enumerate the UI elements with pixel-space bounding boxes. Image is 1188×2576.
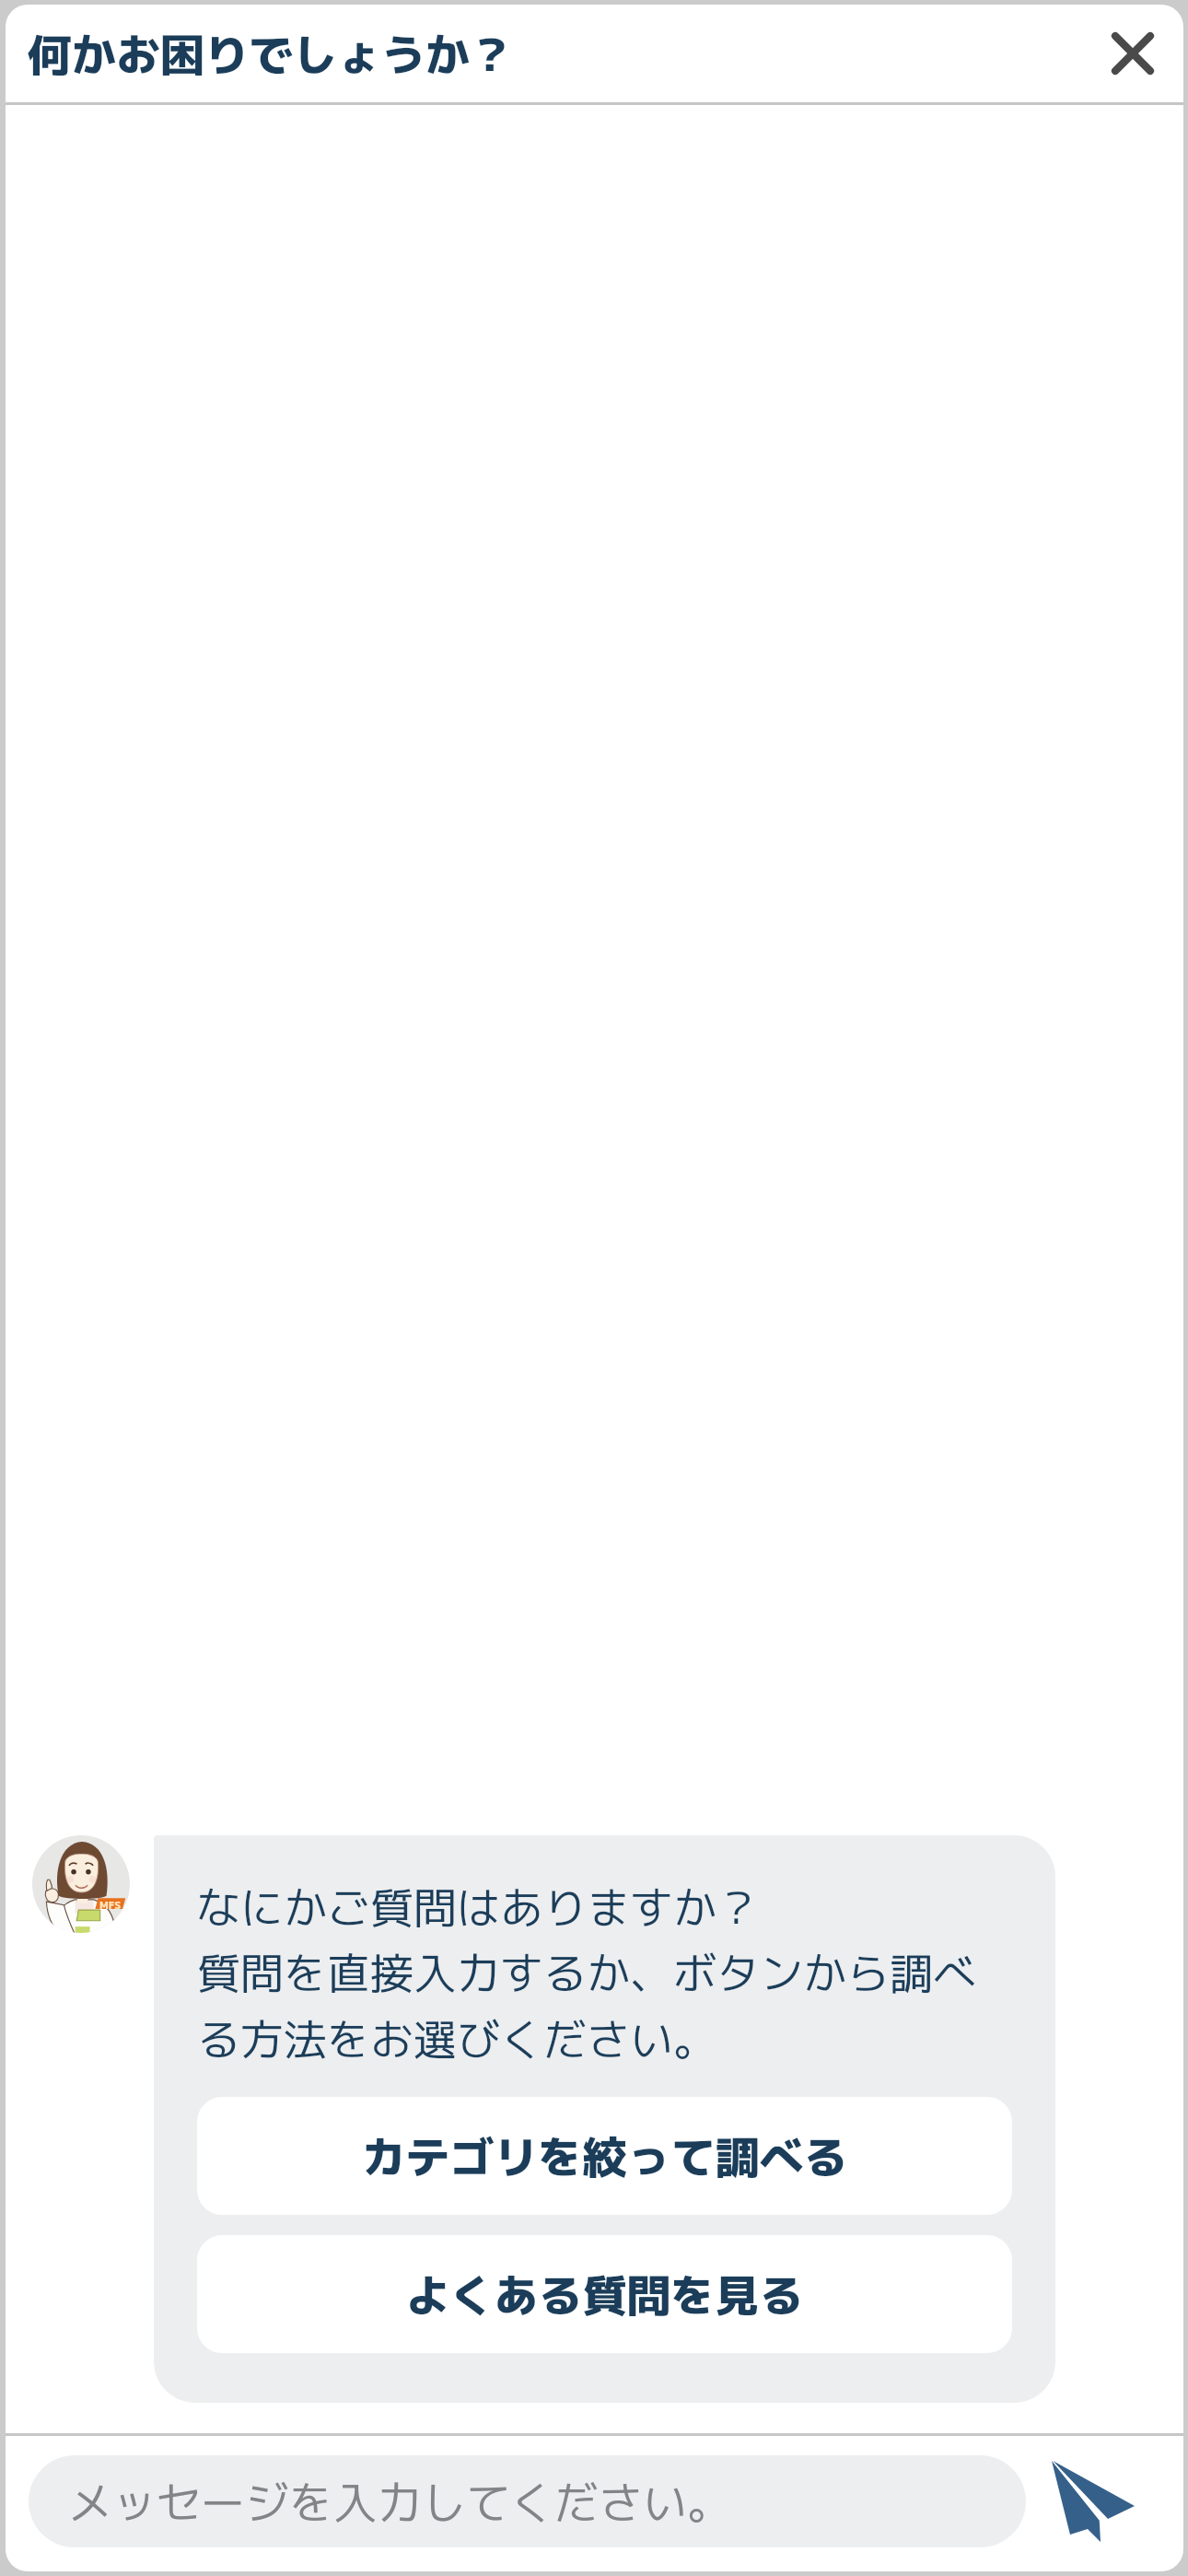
- button[interactable]: カテゴリを絞って調べる: [197, 2097, 1012, 2215]
- staticText: なにかご質問はありますか？ 質問を直接入力するか、ボタンから調べる方法をお選びく…: [197, 1877, 1012, 2069]
- staticText: カテゴリを絞って調べる: [361, 2125, 848, 2187]
- staticText: MFS: [99, 1898, 122, 1912]
- staticText: よくある質問を見る: [405, 2264, 804, 2325]
- button[interactable]: よくある質問を見る: [197, 2235, 1012, 2353]
- button[interactable]: 送信: [1026, 2455, 1166, 2547]
- staticText: 何かお困りでしょうか？: [28, 23, 515, 85]
- button[interactable]: メッセージを入力してください。: [29, 2455, 1026, 2547]
- button[interactable]: 閉じる: [1089, 9, 1177, 98]
- staticText: メッセージを入力してください。: [68, 2471, 732, 2533]
